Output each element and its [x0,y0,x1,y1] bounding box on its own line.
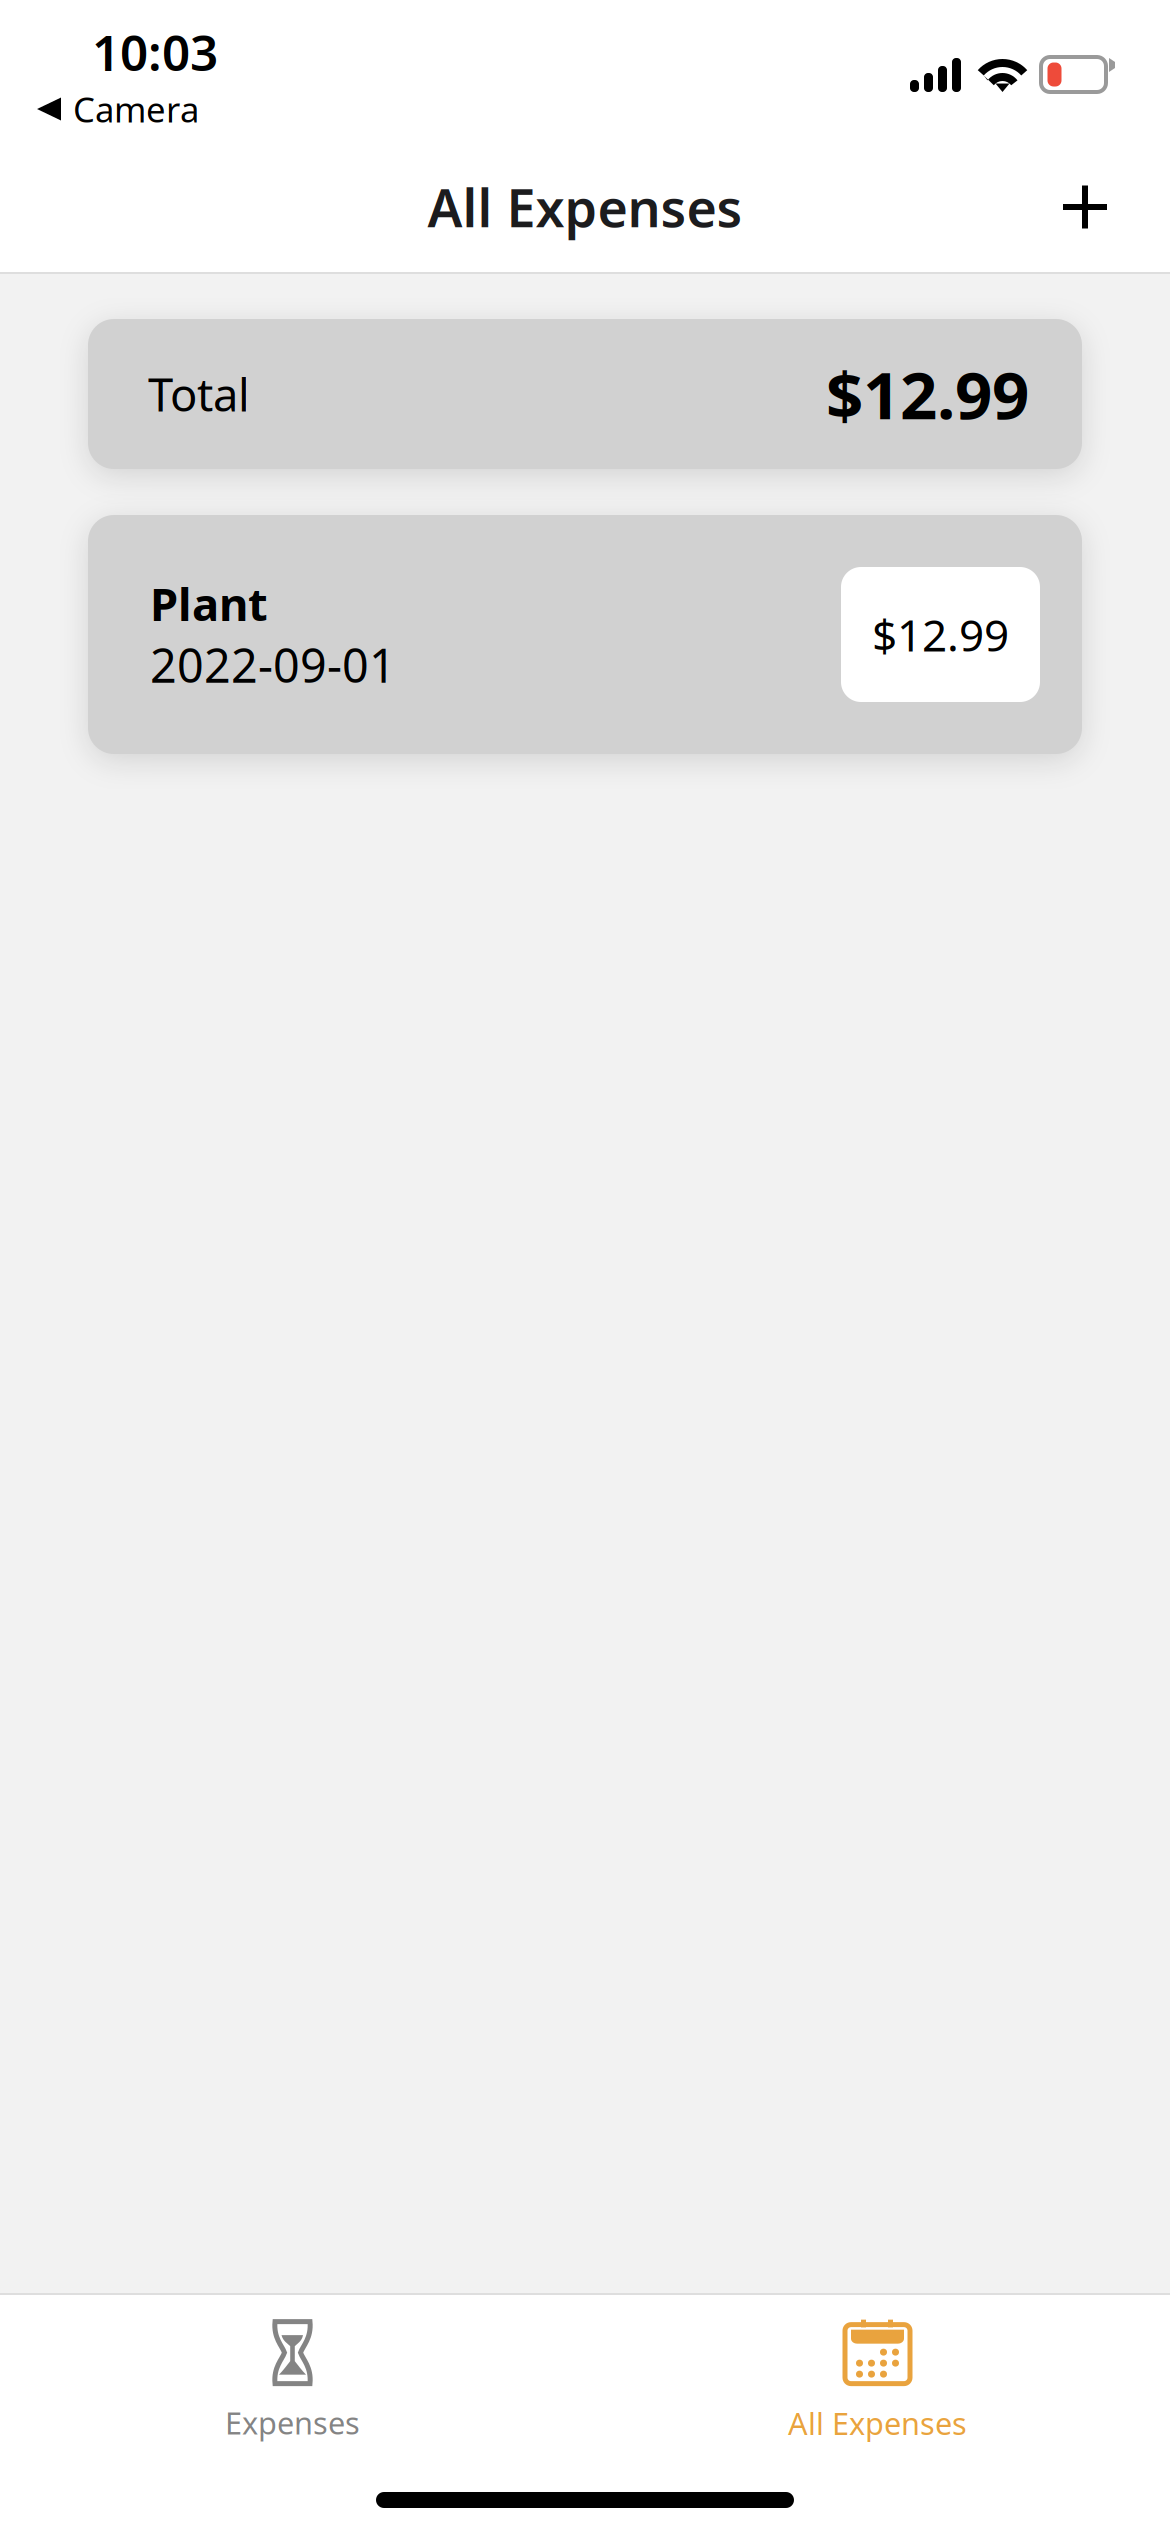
button[interactable]: Add expense [1041,163,1129,250]
staticText: Expenses [225,2402,360,2443]
staticText: All Expenses [788,2403,967,2443]
staticText: 10:03 [92,19,218,84]
staticText: $12.99 [872,605,1009,664]
staticText: All Expenses [427,172,742,242]
staticText: Total [148,364,250,424]
staticText: Plant [150,573,268,634]
button[interactable]: All Expenses [585,2307,1170,2443]
staticText: $12.99 [826,351,1029,437]
staticText: Camera [73,86,199,132]
button[interactable]: Expenses [0,2307,585,2443]
staticText: 2022-09-01 [150,634,396,696]
button[interactable]: Total [88,319,1082,469]
button[interactable]: Camera [37,86,199,132]
button[interactable]: Plant [88,515,1082,754]
